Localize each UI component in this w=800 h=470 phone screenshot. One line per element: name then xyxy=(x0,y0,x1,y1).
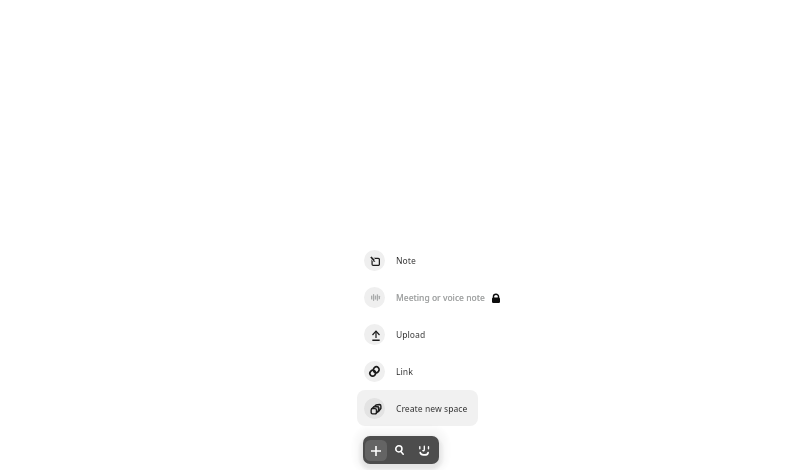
button[interactable]: Note xyxy=(357,242,416,278)
button[interactable]: Link xyxy=(357,353,413,389)
button[interactable]: Meeting or voice note xyxy=(357,279,500,315)
staticText: Upload xyxy=(396,329,426,341)
staticText: Link xyxy=(396,366,413,378)
button[interactable]: Add xyxy=(365,440,387,461)
button[interactable]: Assistant xyxy=(411,436,436,464)
button[interactable]: Upload xyxy=(357,316,426,352)
other: Locked xyxy=(492,294,500,303)
staticText: Note xyxy=(396,255,416,267)
button[interactable]: Create new space xyxy=(357,390,478,426)
staticText: Meeting or voice note xyxy=(396,292,485,304)
button[interactable]: Search xyxy=(387,436,411,464)
staticText: Create new space xyxy=(396,403,468,415)
